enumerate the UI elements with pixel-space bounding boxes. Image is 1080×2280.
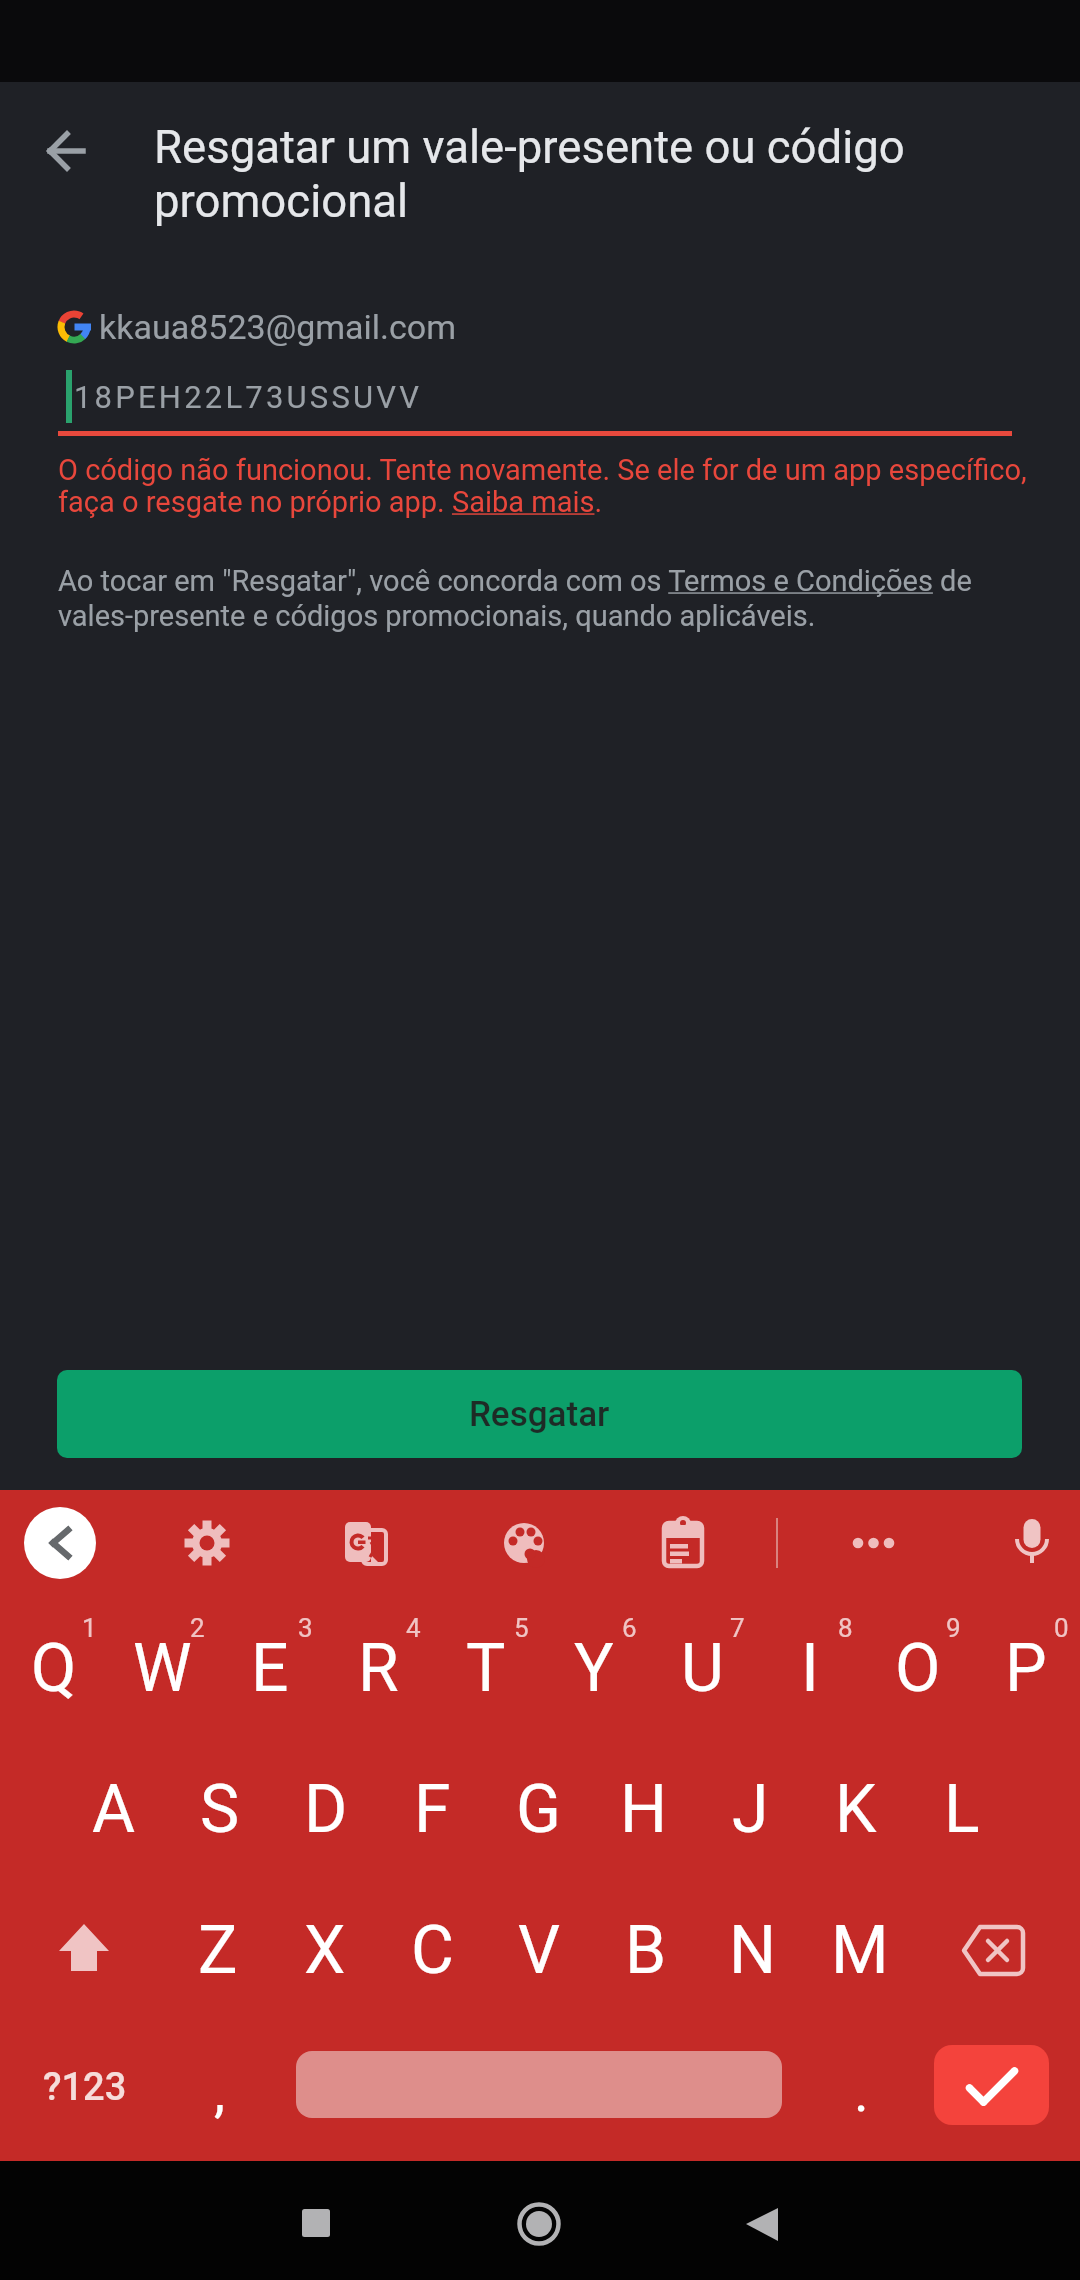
staticText: T [466,1630,506,1707]
staticText: 5 [514,1613,529,1643]
staticText: V [518,1912,561,1989]
button[interactable]: J [697,1739,803,1880]
staticText: 2 [190,1613,205,1643]
button[interactable] [1002,1513,1062,1573]
button[interactable]: R [324,1598,432,1739]
button[interactable]: T [432,1598,540,1739]
button[interactable]: L [909,1739,1015,1880]
button[interactable]: Z [165,1880,271,2021]
button[interactable]: K [803,1739,909,1880]
staticText: D [304,1771,348,1848]
staticText: 8 [838,1613,853,1643]
button[interactable] [337,1513,397,1573]
button[interactable] [296,2051,782,2118]
button[interactable]: . [821,2037,901,2147]
button[interactable]: E [216,1598,324,1739]
staticText: 1 [82,1613,97,1643]
staticText: A [92,1771,136,1848]
staticText: M [831,1912,889,1989]
button[interactable] [494,1513,554,1573]
button[interactable]: O [864,1598,972,1739]
staticText: N [729,1912,777,1989]
button[interactable]: P [972,1598,1080,1739]
staticText: 7 [730,1613,745,1643]
staticText: L [944,1771,980,1848]
staticText: X [304,1912,346,1989]
staticText: vales-presente e códigos promocionais, q… [58,599,816,633]
staticText: O código não funcionou. Tente novamente.… [58,453,1027,487]
button[interactable]: V [486,1880,592,2021]
staticText: 6 [622,1613,637,1643]
staticText: 3 [298,1613,313,1643]
staticText: C [411,1912,454,1989]
button[interactable]: B [593,1880,699,2021]
button[interactable] [934,2045,1049,2125]
button[interactable]: W [108,1598,216,1739]
staticText: K [835,1771,877,1848]
button[interactable] [34,1900,134,2000]
button[interactable]: H [591,1739,697,1880]
button[interactable]: F [379,1739,485,1880]
staticText: H [620,1771,668,1848]
button[interactable] [720,2184,800,2264]
staticText: O [895,1630,941,1707]
staticText: 4 [406,1613,421,1643]
staticText: 0 [1054,1613,1069,1643]
staticText: Q [31,1630,77,1707]
staticText: W [133,1630,192,1707]
button[interactable]: ?123 [25,2047,145,2127]
staticText: kkaua8523@gmail.com [99,307,457,347]
button[interactable] [177,1513,237,1573]
staticText: promocional [154,175,409,228]
staticText: ?123 [43,2065,127,2110]
button[interactable] [833,1513,913,1573]
staticText: B [625,1912,667,1989]
staticText: 18PEH22L73USSUVV [74,379,423,415]
staticText: R [358,1630,399,1707]
button[interactable] [30,115,102,187]
button[interactable] [499,2184,579,2264]
staticText: Resgatar [469,1394,610,1435]
button[interactable]: I [756,1598,864,1739]
staticText: Z [198,1912,238,1989]
staticText: faça o resgate no próprio app. Saiba mai… [58,485,603,519]
staticText: I [801,1630,819,1707]
button[interactable]: G [485,1739,591,1880]
button[interactable]: A [61,1739,167,1880]
staticText: . [854,2059,869,2125]
button[interactable]: Y [540,1598,648,1739]
button[interactable]: , [180,2037,260,2147]
staticText: U [681,1630,724,1707]
button[interactable]: Resgatar [57,1370,1022,1458]
staticText: Resgatar um vale-presente ou código [154,121,905,174]
button[interactable]: S [167,1739,273,1880]
staticText: S [200,1771,240,1848]
staticText: J [732,1771,769,1848]
button[interactable]: C [379,1880,485,2021]
staticText: G [516,1771,561,1848]
button[interactable] [944,1900,1044,2000]
button[interactable]: N [700,1880,806,2021]
staticText: , [214,2059,226,2125]
staticText: P [1005,1630,1047,1707]
button[interactable]: U [648,1598,756,1739]
staticText: 9 [946,1613,961,1643]
button[interactable]: X [272,1880,378,2021]
button[interactable] [653,1514,713,1574]
staticText: F [414,1771,451,1848]
button[interactable]: M [807,1880,913,2021]
button[interactable] [24,1507,96,1579]
button[interactable]: Q [0,1598,108,1739]
staticText: Ao tocar em "Resgatar", você concorda co… [58,564,972,598]
staticText: E [251,1630,289,1707]
staticText: Y [574,1630,614,1707]
button[interactable]: D [273,1739,379,1880]
button[interactable] [276,2183,356,2263]
